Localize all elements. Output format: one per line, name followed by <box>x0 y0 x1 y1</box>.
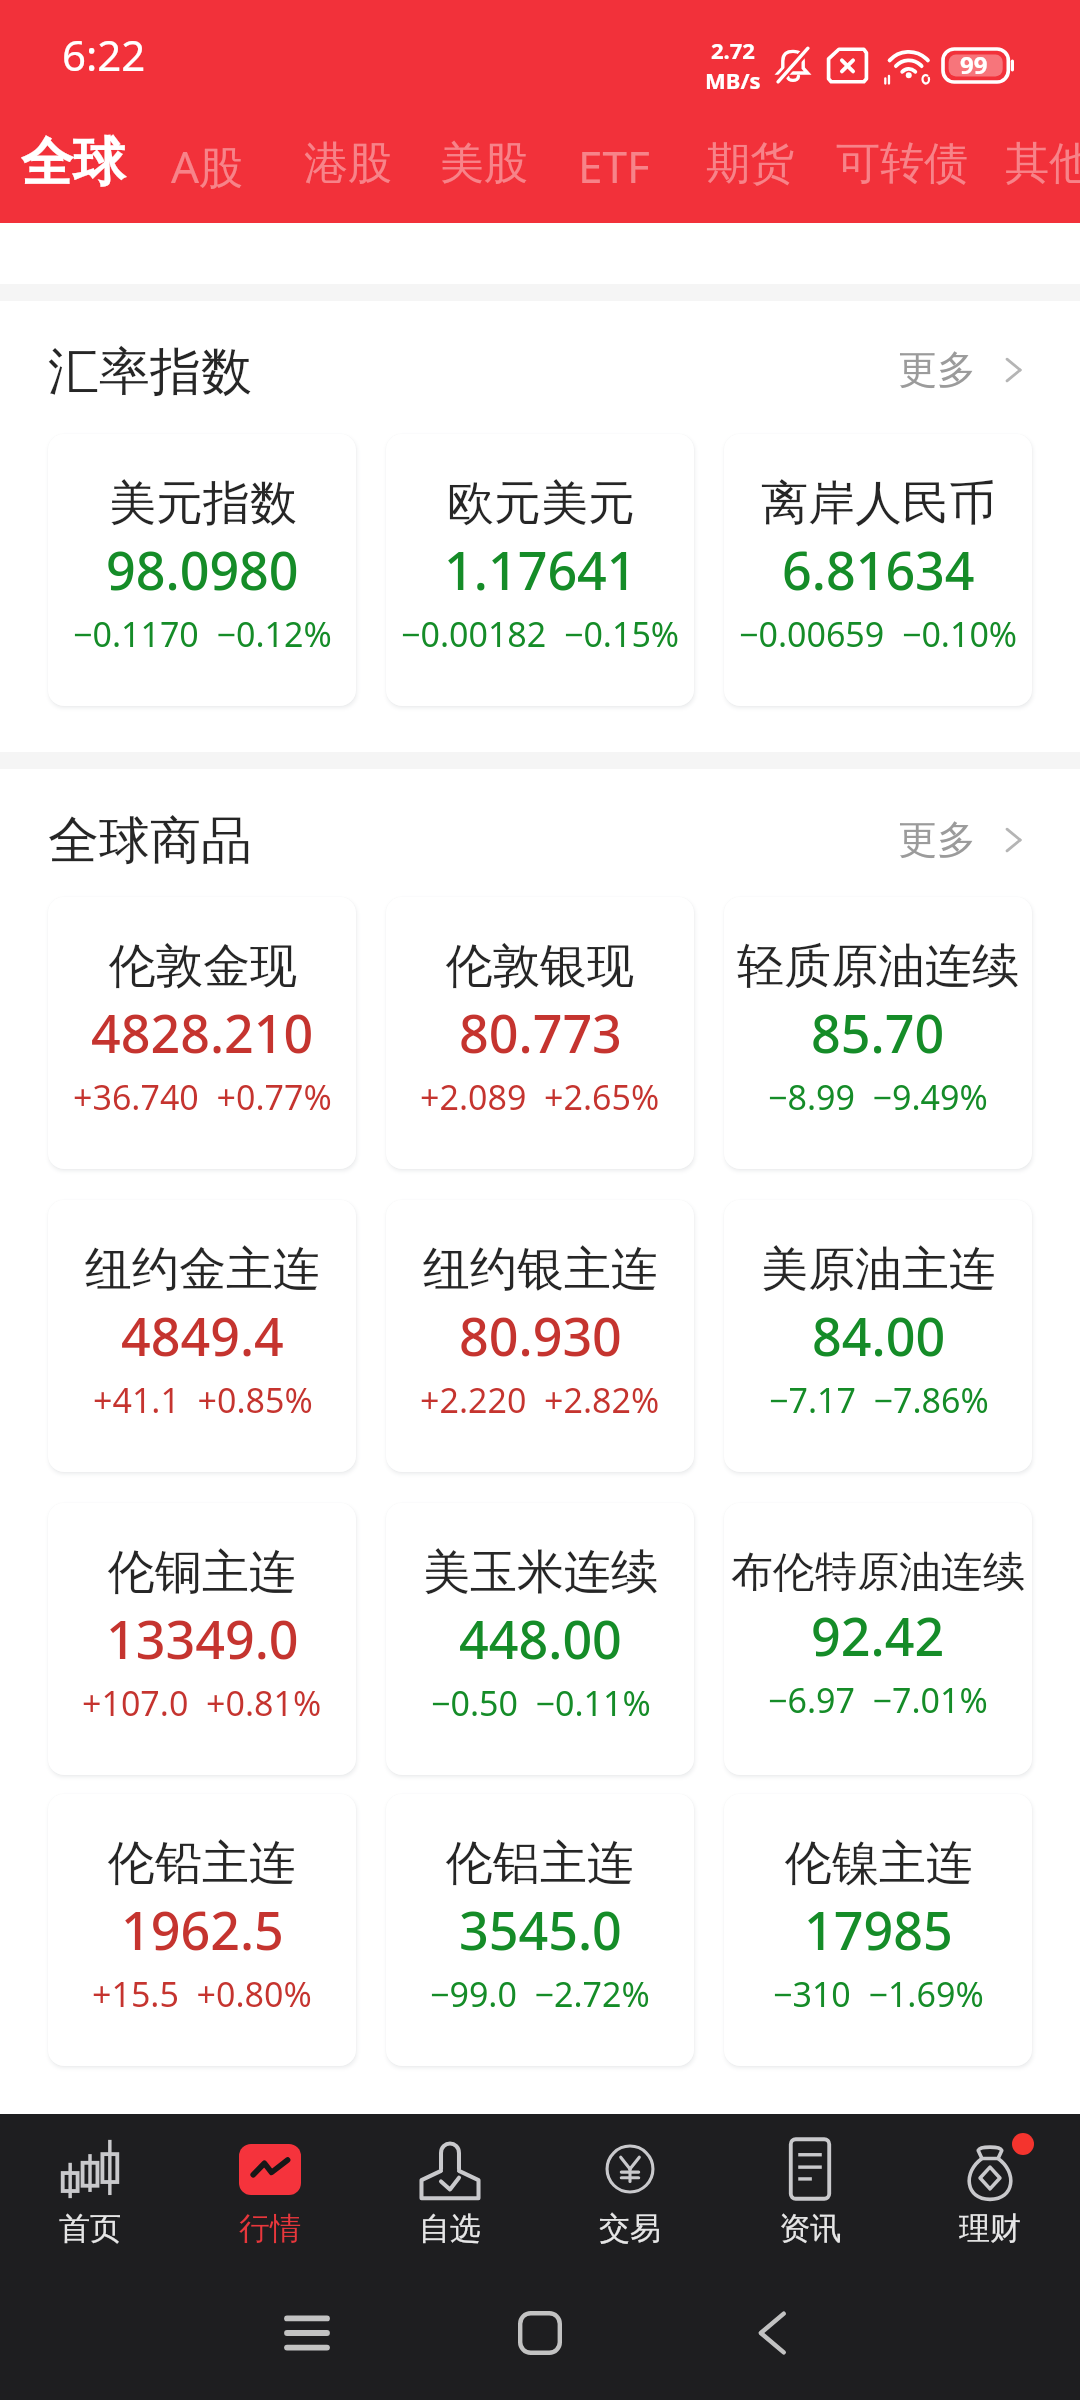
staticText: 伦铝主连 <box>446 1834 634 1893</box>
staticText: 98.0980 <box>106 534 299 605</box>
staticText: +107.0 +0.81% <box>82 1680 322 1726</box>
staticText: 美元指数 <box>109 474 297 533</box>
button[interactable]: 全球 <box>7 116 139 210</box>
staticText: 99 <box>960 48 988 81</box>
button[interactable]: 美元指数 <box>48 434 356 706</box>
staticText: +15.5 +0.80% <box>92 1971 312 2017</box>
button[interactable]: 可转债 <box>822 122 982 205</box>
staticText: 6:22 <box>62 26 146 83</box>
button[interactable]: 离岸人民币 <box>724 434 1032 706</box>
staticText: 2.72 <box>711 35 755 65</box>
staticText: 全球商品 <box>48 809 252 873</box>
staticText: 行情 <box>239 2209 301 2248</box>
staticText: 更多 <box>898 815 976 864</box>
button[interactable]: 期货 <box>692 122 808 205</box>
button[interactable]: 自选 <box>360 2116 540 2248</box>
button[interactable]: Home <box>485 2278 595 2388</box>
staticText: 交易 <box>599 2209 661 2248</box>
staticText: MB/s <box>705 65 761 95</box>
staticText: 1962.5 <box>121 1894 284 1965</box>
button[interactable]: 更多 <box>898 801 1028 878</box>
staticText: 更多 <box>898 345 976 394</box>
button[interactable]: 美原油主连 <box>724 1200 1032 1472</box>
staticText: +2.220 +2.82% <box>420 1377 660 1423</box>
button[interactable]: 理财 <box>900 2116 1080 2248</box>
staticText: 资讯 <box>779 2209 841 2248</box>
staticText: 伦敦金现 <box>109 937 297 996</box>
button[interactable]: 布伦特原油连续 <box>724 1503 1032 1775</box>
staticText: ETF <box>578 136 650 196</box>
button[interactable]: Back <box>717 2278 827 2388</box>
staticText: 其他 <box>1005 136 1080 191</box>
staticText: −99.0 −2.72% <box>430 1971 650 2017</box>
button[interactable]: 伦敦银现 <box>386 897 694 1169</box>
button[interactable]: 港股 <box>290 122 406 205</box>
button[interactable]: 纽约银主连 <box>386 1200 694 1472</box>
staticText: 4828.210 <box>91 997 314 1068</box>
staticText: 全球 <box>21 130 125 196</box>
staticText: 离岸人民币 <box>761 474 996 533</box>
button[interactable]: 伦敦金现 <box>48 897 356 1169</box>
staticText: −8.99 −9.49% <box>768 1074 988 1120</box>
staticText: 伦铜主连 <box>108 1543 296 1602</box>
staticText: 首页 <box>59 2209 121 2248</box>
staticText: 轻质原油连续 <box>737 937 1019 996</box>
staticText: A股 <box>171 136 244 196</box>
button[interactable]: 伦铅主连 <box>48 1794 356 2066</box>
staticText: 欧元美元 <box>447 474 635 533</box>
staticText: 13349.0 <box>106 1603 299 1674</box>
staticText: −6.97 −7.01% <box>768 1677 988 1723</box>
staticText: 自选 <box>419 2209 481 2248</box>
staticText: 85.70 <box>811 997 945 1068</box>
button[interactable]: Recent apps <box>252 2278 362 2388</box>
button[interactable]: 轻质原油连续 <box>724 897 1032 1169</box>
button[interactable]: 伦铝主连 <box>386 1794 694 2066</box>
staticText: 可转债 <box>836 136 968 191</box>
staticText: −0.00182 −0.15% <box>401 611 680 657</box>
staticText: 港股 <box>304 136 392 191</box>
staticText: 布伦特原油连续 <box>731 1546 1025 1599</box>
button[interactable]: 伦铜主连 <box>48 1503 356 1775</box>
staticText: 期货 <box>706 136 794 191</box>
button[interactable]: 资讯 <box>720 2116 900 2248</box>
staticText: 92.42 <box>811 1600 945 1671</box>
staticText: +41.1 +0.85% <box>93 1377 313 1423</box>
staticText: 美玉米连续 <box>423 1543 658 1602</box>
button[interactable]: 纽约金主连 <box>48 1200 356 1472</box>
button[interactable]: 欧元美元 <box>386 434 694 706</box>
staticText: 1.17641 <box>444 534 637 605</box>
staticText: 伦敦银现 <box>446 937 634 996</box>
staticText: 美原油主连 <box>761 1240 996 1299</box>
staticText: −7.17 −7.86% <box>769 1377 989 1423</box>
button[interactable]: 美股 <box>426 122 542 205</box>
button[interactable]: ETF <box>564 122 664 210</box>
staticText: 80.930 <box>459 1300 622 1371</box>
staticText: 伦铅主连 <box>108 1834 296 1893</box>
button[interactable]: 其他 <box>991 122 1080 205</box>
staticText: −0.1170 −0.12% <box>73 611 332 657</box>
staticText: 17985 <box>804 1894 953 1965</box>
button[interactable]: 首页 <box>0 2116 180 2248</box>
staticText: 448.00 <box>459 1603 622 1674</box>
button[interactable]: 伦镍主连 <box>724 1794 1032 2066</box>
staticText: 4849.4 <box>121 1300 284 1371</box>
staticText: +36.740 +0.77% <box>73 1074 332 1120</box>
button[interactable]: A股 <box>157 122 258 210</box>
staticText: 3545.0 <box>459 1894 622 1965</box>
staticText: −0.00659 −0.10% <box>739 611 1018 657</box>
button[interactable]: 更多 <box>898 331 1028 408</box>
staticText: +2.089 +2.65% <box>420 1074 660 1120</box>
staticText: 美股 <box>440 136 528 191</box>
staticText: 84.00 <box>812 1300 946 1371</box>
staticText: 汇率指数 <box>48 340 252 404</box>
staticText: 纽约银主连 <box>423 1240 658 1299</box>
staticText: 80.773 <box>459 997 622 1068</box>
staticText: −0.50 −0.11% <box>431 1680 651 1726</box>
staticText: −310 −1.69% <box>773 1971 984 2017</box>
button[interactable]: 行情 <box>180 2116 360 2248</box>
staticText: 理财 <box>959 2209 1021 2248</box>
button[interactable]: 交易 <box>540 2116 720 2248</box>
staticText: 伦镍主连 <box>785 1834 973 1893</box>
staticText: 6.81634 <box>782 534 975 605</box>
button[interactable]: 美玉米连续 <box>386 1503 694 1775</box>
